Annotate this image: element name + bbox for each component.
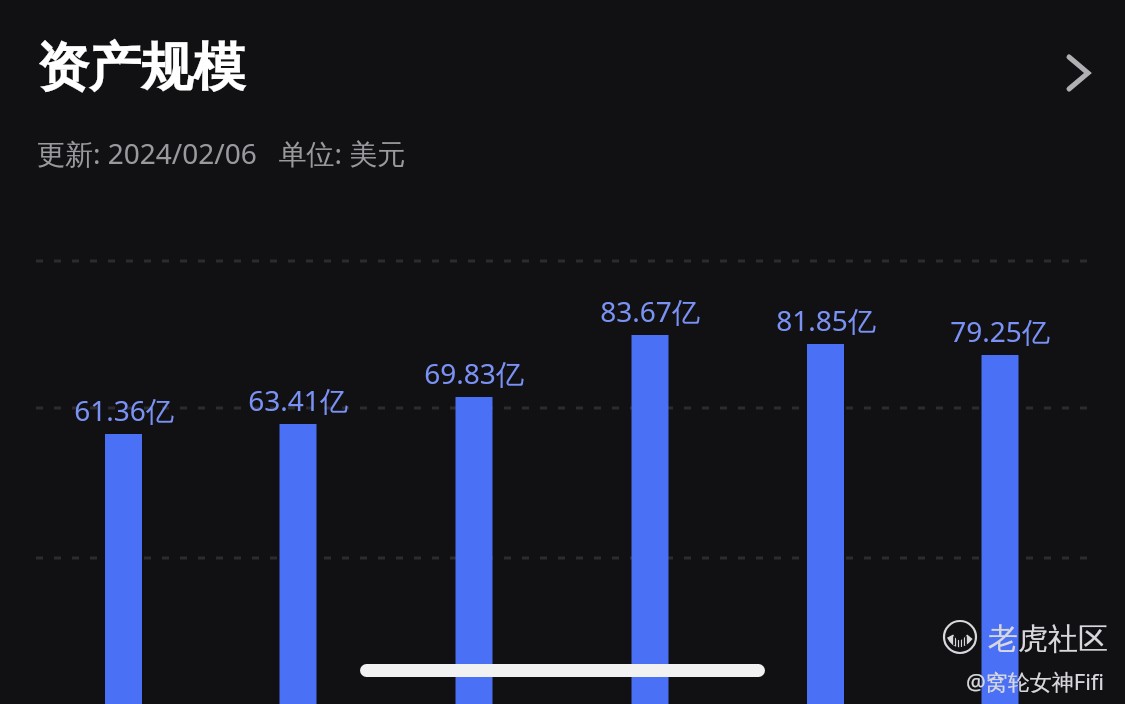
staticText: 61.36亿 xyxy=(34,391,214,429)
staticText: 79.25亿 xyxy=(910,312,1090,350)
staticText: 更新: 2024/02/06 单位: 美元 xyxy=(37,134,406,172)
staticText: 老虎社区 xyxy=(988,620,1108,658)
staticText: @窝轮女神Fifi xyxy=(966,666,1105,696)
staticText: 资产规模 xyxy=(37,35,245,101)
staticText: 69.83亿 xyxy=(384,354,564,392)
staticText: 81.85亿 xyxy=(736,301,916,339)
staticText: 83.67亿 xyxy=(560,292,740,330)
staticText: 63.41亿 xyxy=(208,381,388,419)
button[interactable]: 查看详情 xyxy=(1047,41,1111,105)
